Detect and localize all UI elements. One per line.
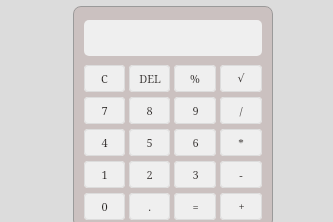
staticText: * [238, 135, 244, 150]
button[interactable]: 7 [84, 97, 125, 124]
button[interactable]: 3 [174, 161, 216, 188]
staticText: = [192, 199, 199, 214]
staticText: 2 [146, 167, 153, 182]
button[interactable]: 5 [129, 129, 170, 156]
staticText: - [239, 167, 243, 182]
button[interactable]: 4 [84, 129, 125, 156]
staticText: 0 [101, 199, 108, 214]
button[interactable]: * [220, 129, 262, 156]
staticText: DEL [139, 71, 161, 86]
staticText: % [190, 71, 200, 86]
button[interactable]: % [174, 65, 216, 92]
staticText: / [239, 103, 243, 118]
staticText: 7 [101, 103, 108, 118]
button[interactable]: C [84, 65, 125, 92]
staticText: C [101, 71, 108, 86]
staticText: √ [237, 72, 245, 85]
staticText: 1 [101, 167, 108, 182]
button[interactable]: DEL [129, 65, 170, 92]
button[interactable]: 8 [129, 97, 170, 124]
staticText: 6 [192, 135, 199, 150]
staticText: 5 [146, 135, 153, 150]
button[interactable]: + [220, 193, 262, 220]
staticText: 4 [101, 135, 108, 150]
button[interactable]: 1 [84, 161, 125, 188]
button[interactable]: - [220, 161, 262, 188]
button[interactable]: 2 [129, 161, 170, 188]
button[interactable]: = [174, 193, 216, 220]
staticText: . [148, 199, 151, 214]
staticText: 3 [192, 167, 199, 182]
button[interactable]: / [220, 97, 262, 124]
button[interactable]: √ [220, 65, 262, 92]
button[interactable]: 0 [84, 193, 125, 220]
staticText: 8 [146, 103, 153, 118]
button[interactable]: . [129, 193, 170, 220]
button[interactable]: 9 [174, 97, 216, 124]
button[interactable]: 6 [174, 129, 216, 156]
staticText: 9 [192, 103, 199, 118]
staticText: + [238, 199, 245, 214]
